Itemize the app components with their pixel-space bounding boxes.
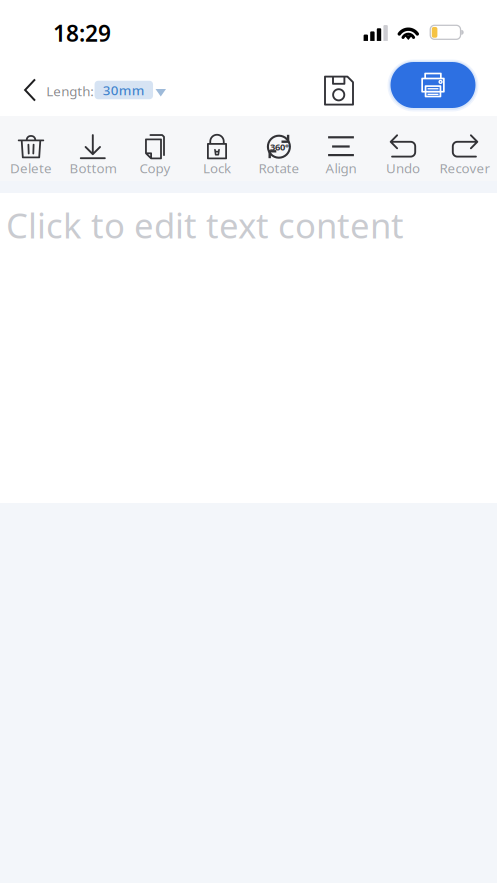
button[interactable]: Delete (0, 130, 62, 180)
button[interactable]: 360° (248, 130, 310, 180)
button[interactable]: Recover (434, 130, 496, 180)
staticText: 18:29 (53, 18, 111, 48)
button[interactable]: Back (10, 68, 50, 112)
staticText: Length: (46, 82, 94, 100)
button[interactable]: Change length (148, 80, 174, 106)
staticText: Copy (139, 159, 170, 177)
staticText: Align (325, 159, 356, 177)
staticText: 360° (270, 141, 289, 153)
button[interactable]: Save (317, 69, 361, 113)
button[interactable]: Align (310, 130, 372, 180)
button[interactable]: 30mm (94, 81, 153, 99)
staticText: 30mm (103, 81, 145, 99)
staticText: Lock (203, 159, 231, 177)
button[interactable]: Click to edit text content (0, 195, 497, 255)
button[interactable]: Print (390, 62, 475, 108)
button[interactable]: Copy (124, 130, 186, 180)
button[interactable]: Lock (186, 130, 248, 180)
staticText: Recover (439, 159, 490, 177)
staticText: Delete (10, 159, 52, 177)
staticText: Rotate (258, 159, 299, 177)
button[interactable]: Bottom (62, 130, 124, 180)
staticText: Click to edit text content (6, 202, 404, 248)
staticText: Bottom (69, 159, 116, 177)
staticText: Undo (386, 159, 420, 177)
button[interactable]: Undo (372, 130, 434, 180)
